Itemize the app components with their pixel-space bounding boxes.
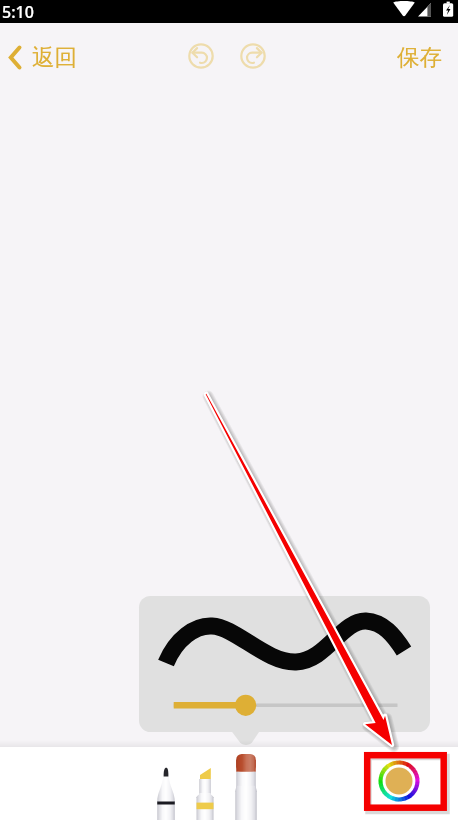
button[interactable]: Pencil xyxy=(147,747,185,820)
button[interactable]: Marker xyxy=(226,747,266,820)
button[interactable]: Undo xyxy=(188,43,214,69)
staticText: 返回 xyxy=(32,43,77,71)
staticText: 5:10 xyxy=(2,1,34,23)
button[interactable]: Colour picker xyxy=(372,754,426,808)
button[interactable]: Drawing canvas xyxy=(0,0,458,820)
button[interactable]: 保存 xyxy=(381,39,458,75)
button[interactable]: Redo xyxy=(240,43,266,69)
button[interactable]: 返回 xyxy=(0,39,89,75)
button[interactable] xyxy=(139,596,430,732)
button[interactable]: Highlighter xyxy=(187,747,223,820)
staticText: 保存 xyxy=(397,43,442,71)
